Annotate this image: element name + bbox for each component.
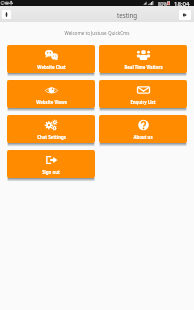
button[interactable]: Website Views xyxy=(7,80,95,108)
staticText: testing xyxy=(117,11,138,19)
staticText: 80% xyxy=(158,1,167,7)
button[interactable]: App icon xyxy=(2,10,11,19)
staticText: Chat Settings xyxy=(37,134,66,140)
staticText: Website Chat xyxy=(37,64,66,70)
button[interactable]: Real Time Visitors xyxy=(99,45,187,73)
staticText: Website Views xyxy=(36,99,67,105)
staticText: Real Time Visitors xyxy=(124,64,163,70)
button[interactable]: Sign out xyxy=(179,10,191,20)
button[interactable]: Website Chat xyxy=(7,45,95,73)
staticText: Sign out xyxy=(42,169,60,175)
button[interactable]: About us xyxy=(99,115,187,143)
button[interactable]: Chat Settings xyxy=(7,115,95,143)
staticText: 18:04 xyxy=(174,0,190,6)
button[interactable]: Enquiry List xyxy=(99,80,187,108)
staticText: Enquiry List xyxy=(130,99,156,105)
staticText: Welcome to Justuse QuickCms xyxy=(0,30,194,36)
staticText: About us xyxy=(133,134,153,140)
button[interactable]: Sign out xyxy=(7,150,95,178)
